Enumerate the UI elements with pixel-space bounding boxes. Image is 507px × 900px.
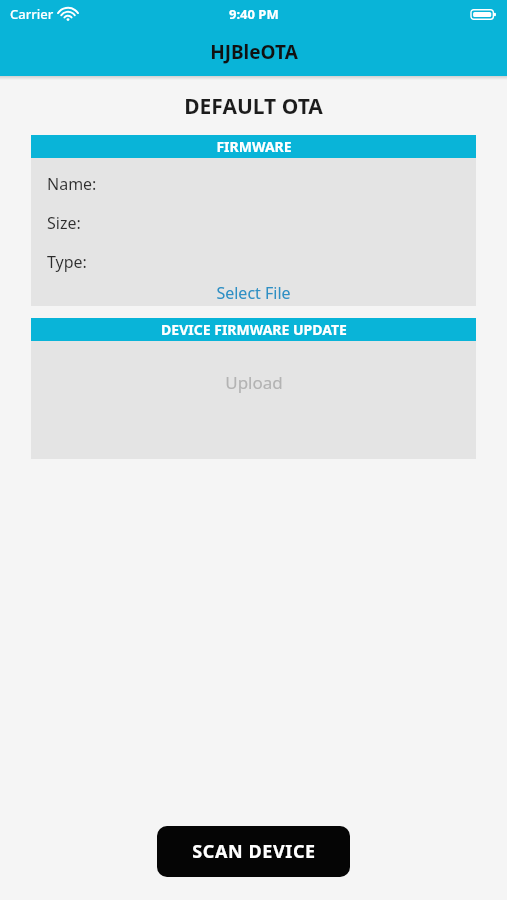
staticText: Name:: [47, 173, 97, 195]
staticText: SCAN DEVICE: [192, 839, 316, 864]
staticText: DEVICE FIRMWARE UPDATE: [161, 320, 347, 339]
staticText: DEFAULT OTA: [0, 92, 507, 121]
staticText: Upload: [225, 371, 283, 394]
staticText: Select File: [216, 282, 291, 304]
staticText: Type:: [47, 251, 87, 273]
button[interactable]: Upload: [31, 371, 476, 394]
staticText: 9:40 PM: [229, 5, 279, 23]
button[interactable]: SCAN DEVICE: [157, 826, 350, 877]
staticText: HJBleOTA: [210, 39, 298, 65]
staticText: FIRMWARE: [216, 137, 292, 156]
button[interactable]: Select File: [31, 282, 476, 304]
staticText: Size:: [47, 212, 81, 234]
staticText: Carrier: [10, 5, 54, 23]
